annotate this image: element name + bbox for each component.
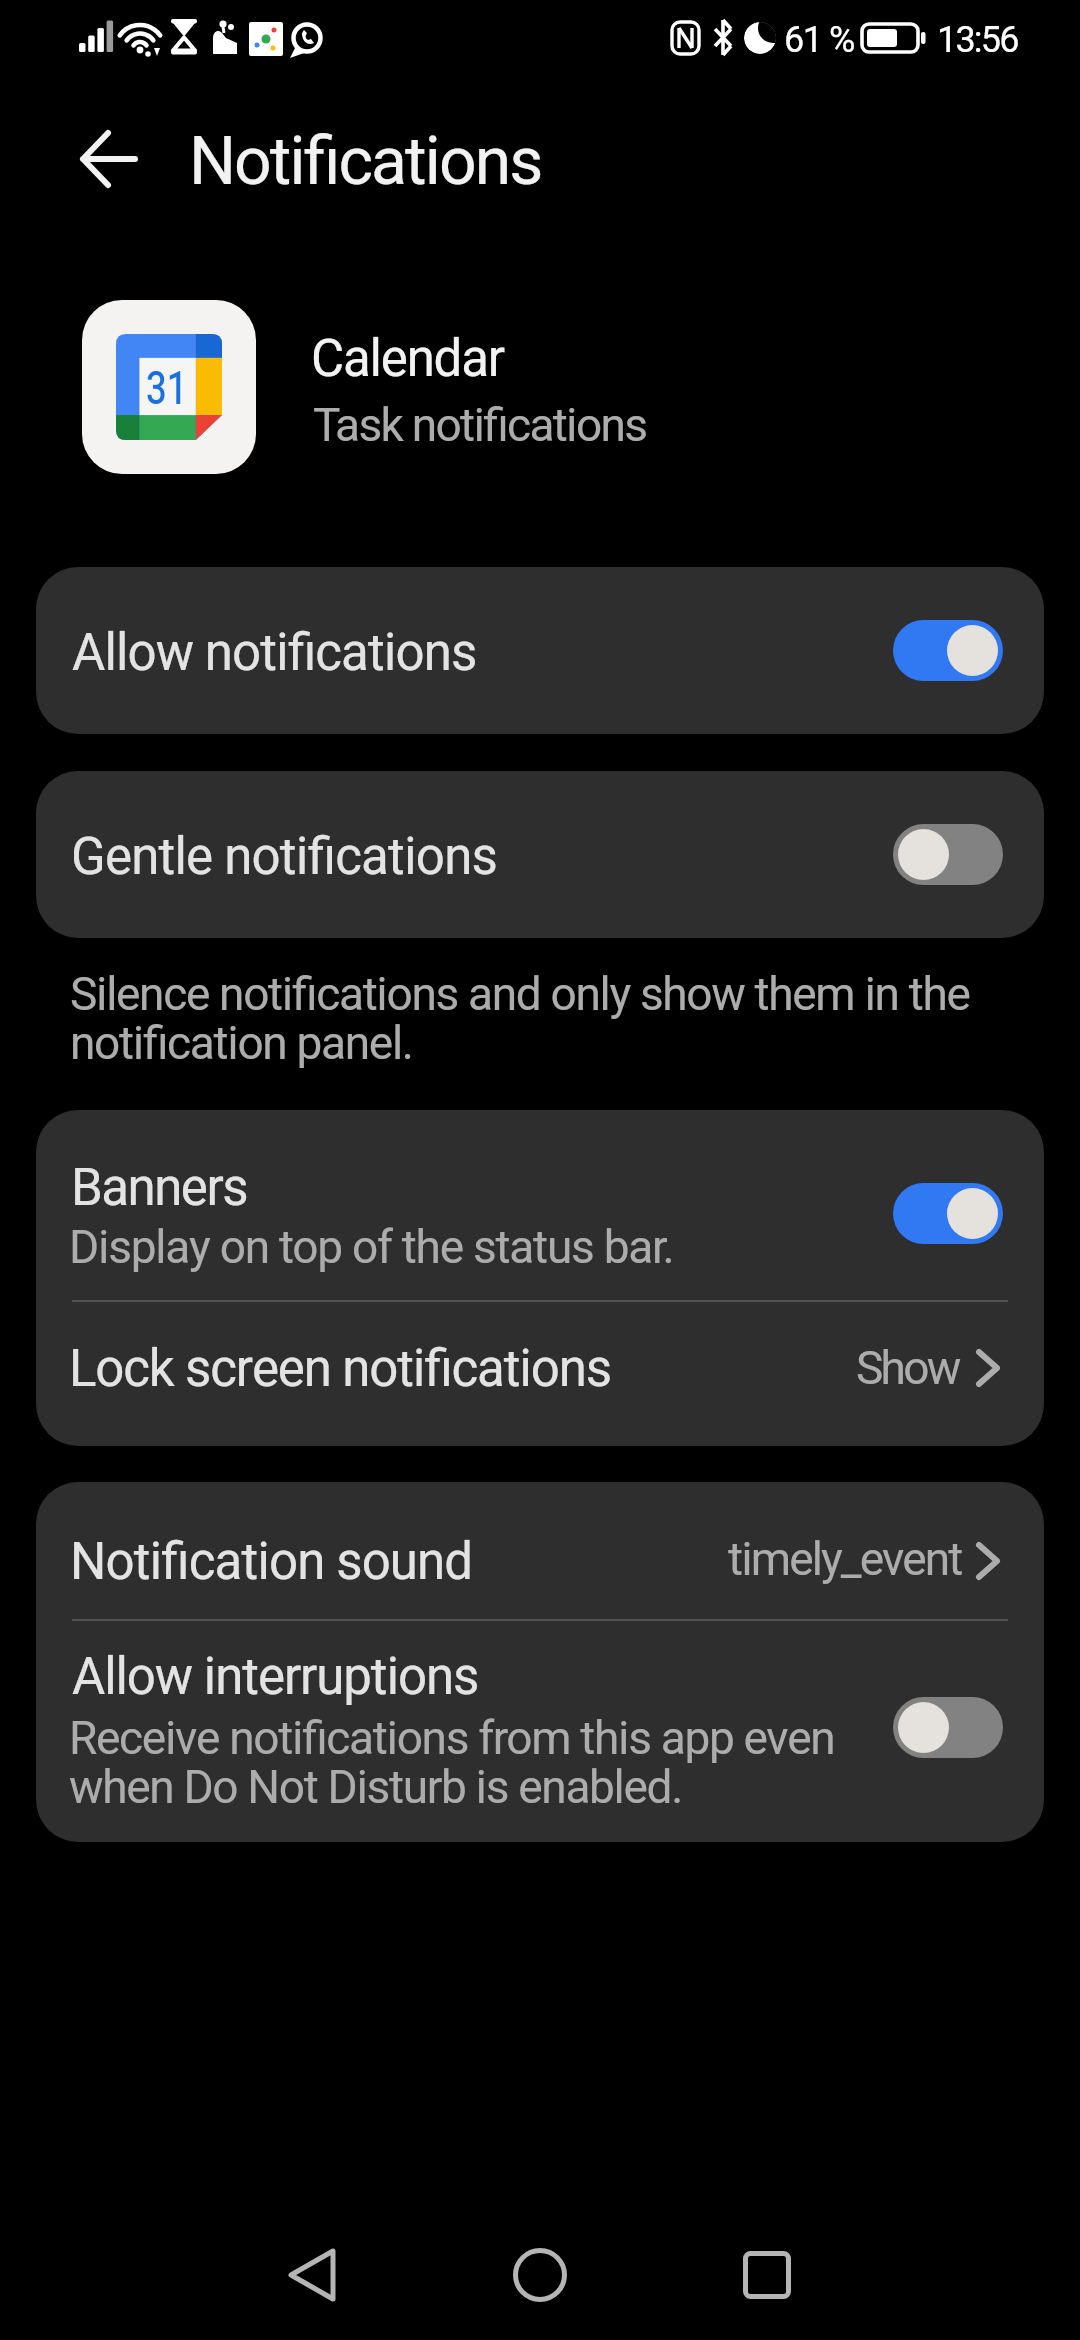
button[interactable]: Switch on [893, 1183, 1003, 1244]
staticText: Calendar [311, 323, 504, 398]
staticText: Receive notifications from this app even… [69, 1706, 835, 1822]
button[interactable]: Back [274, 2237, 350, 2313]
staticText: Notifications [189, 115, 542, 212]
button[interactable]: Open [958, 1531, 1018, 1591]
staticText: Task notifications [313, 393, 647, 461]
button[interactable]: Switch on [893, 620, 1003, 681]
staticText: Allow interruptions [72, 1641, 479, 1716]
staticText: Gentle notifications [71, 821, 498, 896]
button[interactable]: Gentle notifications [36, 771, 1044, 938]
staticText: Silence notifications and only show them… [70, 962, 970, 1078]
button[interactable]: Banners [36, 1110, 1044, 1446]
staticText: 13:56 [937, 14, 1018, 67]
button[interactable]: Recent apps [729, 2237, 805, 2313]
button[interactable]: Switch off [893, 1697, 1003, 1758]
button[interactable]: Back [60, 122, 158, 196]
staticText: Lock screen notifications [69, 1333, 611, 1408]
staticText: Allow notifications [72, 617, 477, 692]
staticText: Display on top of the status bar. [69, 1215, 674, 1283]
staticText: Notification sound [70, 1526, 473, 1601]
staticText: 31 [146, 355, 188, 424]
staticText: Banners [71, 1152, 248, 1227]
button[interactable]: Allow notifications [36, 567, 1044, 734]
button[interactable]: Home [502, 2237, 578, 2313]
button[interactable]: Open [958, 1338, 1018, 1398]
button[interactable]: Notification sound [36, 1482, 1044, 1842]
staticText: Show [856, 1336, 959, 1404]
staticText: 61 % [784, 14, 854, 67]
button[interactable]: Switch off [893, 824, 1003, 885]
staticText: timely_event [728, 1527, 962, 1595]
